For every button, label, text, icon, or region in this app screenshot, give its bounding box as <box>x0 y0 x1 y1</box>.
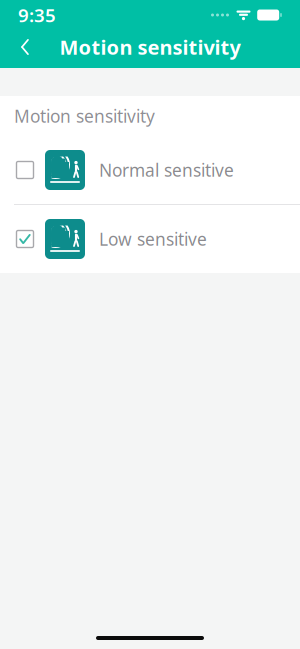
staticText: Motion sensitivity <box>59 34 240 60</box>
button[interactable]: Back <box>8 30 42 64</box>
staticText: Normal sensitive <box>99 158 234 181</box>
staticText: Motion sensitivity <box>14 104 155 127</box>
button[interactable]: Normal sensitive <box>0 136 300 204</box>
staticText: Low sensitive <box>99 227 207 250</box>
staticText: 9:35 <box>18 3 56 27</box>
button[interactable]: Low sensitive <box>0 205 300 273</box>
